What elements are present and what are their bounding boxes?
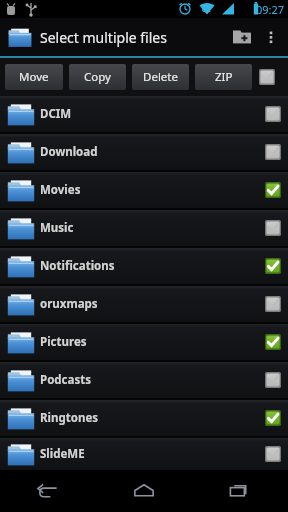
button[interactable]: Select all	[258, 68, 276, 86]
staticText: ZIP	[215, 69, 233, 85]
staticText: 62	[202, 4, 211, 14]
staticText: Select multiple files	[40, 28, 167, 47]
button[interactable]: SlideME	[0, 438, 288, 470]
staticText: DCIM	[40, 106, 72, 122]
staticText: Delete	[143, 69, 178, 85]
staticText: SlideME	[40, 446, 85, 462]
button[interactable]: Notifications	[0, 248, 288, 284]
button[interactable]: Select Download	[264, 143, 282, 161]
button[interactable]: Music	[0, 210, 288, 246]
button[interactable]: Back	[0, 470, 96, 512]
staticText: Movies	[40, 182, 81, 198]
staticText: Music	[40, 220, 74, 236]
button[interactable]: Home	[96, 470, 192, 512]
staticText: oruxmaps	[40, 296, 98, 312]
button[interactable]: Selected Notifications	[264, 257, 282, 275]
staticText: Ringtones	[40, 410, 99, 426]
button[interactable]: Podcasts	[0, 362, 288, 398]
button[interactable]: Delete	[132, 64, 189, 90]
staticText: Download	[40, 144, 98, 160]
button[interactable]: Selected Movies	[264, 181, 282, 199]
staticText: Notifications	[40, 258, 115, 274]
button[interactable]: New folder	[226, 21, 258, 53]
button[interactable]: Pictures	[0, 324, 288, 360]
button[interactable]: Selected Pictures	[264, 333, 282, 351]
staticText: Pictures	[40, 334, 87, 350]
button[interactable]: Movies	[0, 172, 288, 208]
button[interactable]: Recent apps	[192, 470, 288, 512]
button[interactable]: Download	[0, 134, 288, 170]
button[interactable]: Select Podcasts	[264, 371, 282, 389]
button[interactable]: Copy	[69, 64, 126, 90]
button[interactable]: More options	[258, 24, 284, 50]
button[interactable]: Move	[5, 64, 63, 90]
button[interactable]: oruxmaps	[0, 286, 288, 322]
button[interactable]: Selected Ringtones	[264, 409, 282, 427]
button[interactable]: DCIM	[0, 96, 288, 132]
button[interactable]: Select SlideME	[264, 445, 282, 463]
staticText: 09:27	[256, 2, 285, 17]
button[interactable]: ZIP	[195, 64, 252, 90]
button[interactable]: Ringtones	[0, 400, 288, 436]
button[interactable]: Select DCIM	[264, 105, 282, 123]
button[interactable]: Select oruxmaps	[264, 295, 282, 313]
staticText: Copy	[84, 69, 111, 85]
staticText: Move	[19, 69, 49, 85]
staticText: Podcasts	[40, 372, 91, 388]
button[interactable]: Select Music	[264, 219, 282, 237]
